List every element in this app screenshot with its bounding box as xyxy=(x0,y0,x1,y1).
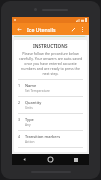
button[interactable]: Home xyxy=(37,154,63,165)
staticText: Please follow the procedure below carefu… xyxy=(18,51,83,76)
button[interactable]: 3 xyxy=(18,114,83,130)
staticText: 2 xyxy=(18,100,21,105)
staticText: INSTRUCTIONS xyxy=(33,43,68,49)
staticText: Type xyxy=(25,117,34,122)
staticText: Units xyxy=(25,106,33,110)
staticText: Any xyxy=(25,123,31,127)
staticText: 4 xyxy=(18,134,21,139)
staticText: Set Temperature xyxy=(25,89,50,93)
button[interactable]: Recents xyxy=(63,154,89,165)
button[interactable]: Back xyxy=(12,154,37,165)
staticText: Ice Utensils xyxy=(27,26,56,33)
button[interactable]: 2 xyxy=(18,97,83,113)
button[interactable]: 4 xyxy=(18,131,83,147)
staticText: Quantity xyxy=(25,100,42,105)
staticText: 1 xyxy=(18,83,21,88)
staticText: Name xyxy=(25,83,37,88)
button[interactable]: Back xyxy=(15,25,24,34)
button[interactable]: More options xyxy=(78,25,86,33)
button[interactable]: Edit xyxy=(69,25,78,34)
button[interactable]: 1 xyxy=(18,80,83,96)
staticText: 3 xyxy=(18,117,21,122)
staticText: Transition markers xyxy=(25,134,61,139)
staticText: Action xyxy=(25,140,35,144)
